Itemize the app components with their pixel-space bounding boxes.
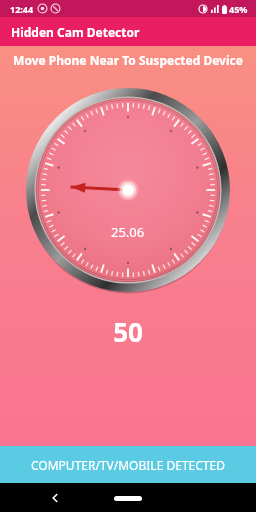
button[interactable]: Home (108, 491, 148, 505)
staticText: 25.06 (111, 223, 145, 241)
button[interactable]: Back (44, 487, 66, 509)
staticText: COMPUTER/TV/MOBILE DETECTED (31, 457, 225, 473)
staticText: 45% (229, 3, 248, 15)
staticText: 50 (0, 314, 256, 349)
button[interactable]: COMPUTER/TV/MOBILE DETECTED (0, 446, 256, 483)
staticText: Move Phone Near To Suspected Device (6, 52, 250, 68)
staticText: 12:44 (10, 3, 34, 15)
button[interactable]: EMF meter gauge reading 25.06 (26, 88, 230, 292)
staticText: Hidden Cam Detector (11, 24, 140, 40)
